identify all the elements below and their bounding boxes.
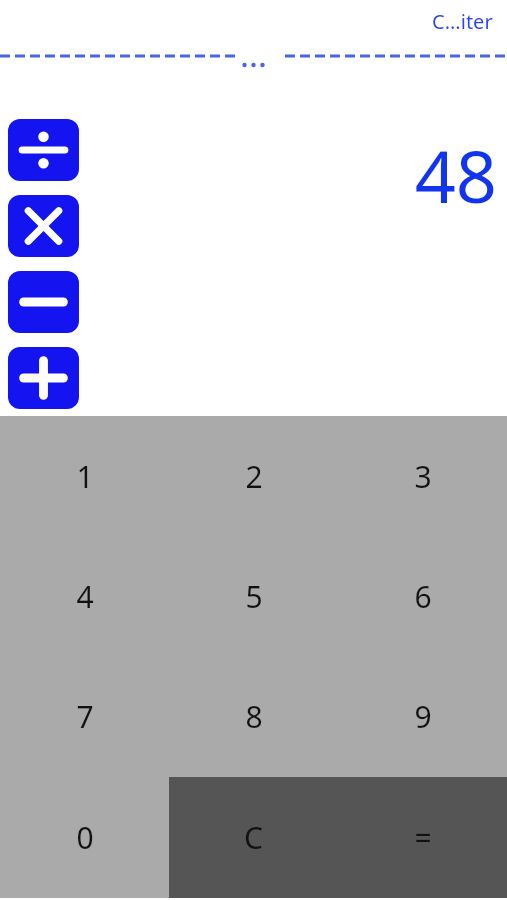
button[interactable]: 9 — [338, 656, 507, 777]
button[interactable]: 8 — [169, 656, 338, 777]
staticText: 1 — [76, 456, 94, 497]
button[interactable]: C — [169, 777, 338, 898]
button[interactable]: C...iter — [432, 8, 493, 35]
staticText: C...iter — [432, 8, 493, 35]
staticText: 4 — [76, 576, 94, 617]
button[interactable]: Subtract — [8, 271, 79, 333]
button[interactable]: Divide — [8, 119, 79, 181]
button[interactable]: Multiply — [8, 195, 79, 257]
button[interactable]: 4 — [0, 536, 169, 656]
staticText: 3 — [414, 456, 432, 497]
button[interactable]: 7 — [0, 656, 169, 777]
staticText: 48 — [414, 126, 497, 224]
button[interactable]: 6 — [338, 536, 507, 656]
staticText: 9 — [414, 696, 432, 737]
staticText: 6 — [414, 576, 432, 617]
button[interactable]: 0 — [0, 777, 169, 898]
button[interactable]: = — [338, 777, 507, 898]
button[interactable]: 1 — [0, 416, 169, 536]
staticText: 7 — [76, 696, 94, 737]
staticText: C — [244, 817, 263, 858]
staticText: = — [414, 817, 432, 858]
button[interactable]: 3 — [338, 416, 507, 536]
button[interactable]: 5 — [169, 536, 338, 656]
button[interactable]: Add — [8, 347, 79, 409]
staticText: 5 — [245, 576, 263, 617]
staticText: 2 — [245, 456, 263, 497]
staticText: 8 — [245, 696, 263, 737]
staticText: 0 — [76, 817, 94, 858]
button[interactable]: 2 — [169, 416, 338, 536]
